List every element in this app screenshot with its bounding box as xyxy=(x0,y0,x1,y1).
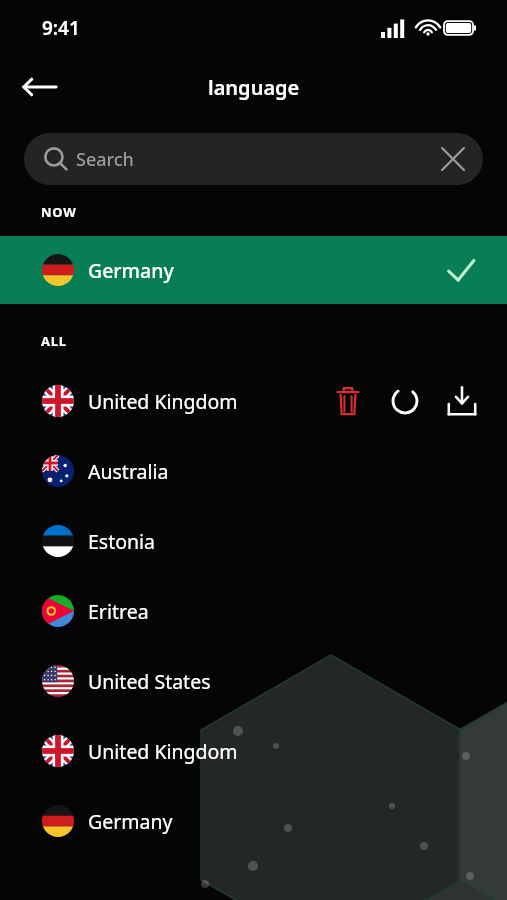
button[interactable]: United Kingdom xyxy=(0,366,507,436)
staticText: Australia xyxy=(88,458,169,485)
staticText: language xyxy=(208,74,300,101)
staticText: NOW xyxy=(41,203,77,221)
staticText: ALL xyxy=(41,332,67,350)
staticText: Germany xyxy=(88,808,173,835)
button[interactable]: United States xyxy=(0,646,507,716)
staticText: United Kingdom xyxy=(88,388,238,415)
button[interactable]: Australia xyxy=(0,436,507,506)
button[interactable]: Eritrea xyxy=(0,576,507,646)
button[interactable]: Back xyxy=(16,63,64,111)
staticText: Germany xyxy=(88,257,174,284)
button[interactable]: Estonia xyxy=(0,506,507,576)
button[interactable]: Search xyxy=(24,133,483,185)
button[interactable]: United Kingdom xyxy=(0,716,507,786)
staticText: United States xyxy=(88,668,211,695)
staticText: 9:41 xyxy=(42,15,80,41)
staticText: Estonia xyxy=(88,528,156,555)
button[interactable]: Germany xyxy=(0,786,507,856)
staticText: United Kingdom xyxy=(88,738,238,765)
button[interactable]: Germany xyxy=(0,236,507,304)
staticText: Eritrea xyxy=(88,598,149,625)
staticText: Search xyxy=(76,147,134,172)
